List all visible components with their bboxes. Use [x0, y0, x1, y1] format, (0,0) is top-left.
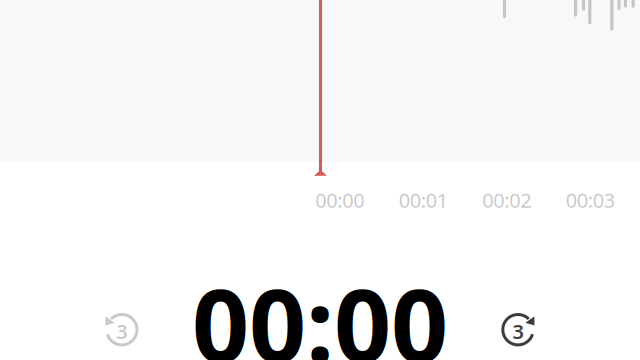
staticText: 00:00	[192, 257, 448, 360]
staticText: 00:03	[566, 187, 615, 213]
staticText: 00:02	[482, 187, 531, 213]
button[interactable]: Skip back 3 seconds	[102, 311, 142, 351]
staticText: 3	[512, 318, 523, 345]
staticText: 00:01	[399, 187, 448, 213]
staticText: 3	[116, 318, 127, 345]
staticText: 00:00	[315, 187, 364, 213]
button[interactable]: Skip forward 3 seconds	[498, 311, 538, 351]
